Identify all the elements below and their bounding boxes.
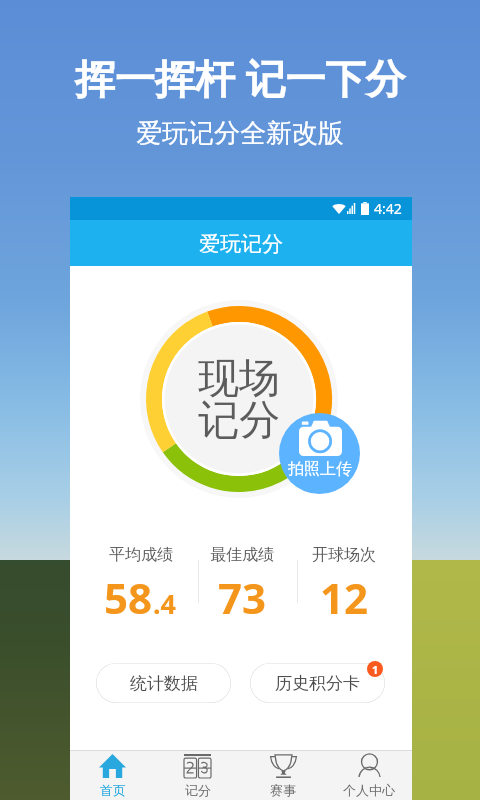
staticText: 4:42 xyxy=(374,199,402,218)
staticText: 1 xyxy=(372,662,379,677)
button[interactable]: 拍照上传 xyxy=(279,413,360,494)
staticText: 58 xyxy=(104,569,153,623)
button[interactable]: 记分 xyxy=(155,751,240,800)
button[interactable]: 开球场次 xyxy=(293,545,395,623)
button[interactable]: 统计数据 xyxy=(96,663,231,703)
staticText: 个人中心 xyxy=(343,782,395,798)
staticText: 现场 记分 xyxy=(198,353,280,447)
staticText: 12 xyxy=(320,569,369,623)
staticText: 最佳成绩 xyxy=(210,545,274,565)
button[interactable]: 个人中心 xyxy=(326,751,412,800)
button[interactable]: 最佳成绩 xyxy=(191,545,293,623)
staticText: 开球场次 xyxy=(312,545,376,565)
button[interactable]: 历史积分卡 xyxy=(250,663,385,703)
button[interactable]: 平均成绩 xyxy=(90,545,191,623)
staticText: 历史积分卡 xyxy=(275,673,360,694)
staticText: 记分 xyxy=(185,782,211,798)
staticText: 赛事 xyxy=(270,782,296,798)
staticText: .4 xyxy=(153,585,177,622)
staticText: 爱玩记分全新改版 xyxy=(136,117,344,150)
staticText: 首页 xyxy=(100,782,126,798)
staticText: 挥一挥杆 记一下分 xyxy=(75,50,406,105)
staticText: 统计数据 xyxy=(130,673,198,694)
staticText: 爱玩记分 xyxy=(199,231,283,257)
button[interactable]: 赛事 xyxy=(240,751,326,800)
staticText: 平均成绩 xyxy=(109,545,173,565)
button[interactable]: 首页 xyxy=(70,751,155,800)
staticText: 73 xyxy=(218,569,267,623)
staticText: 拍照上传 xyxy=(288,459,352,479)
